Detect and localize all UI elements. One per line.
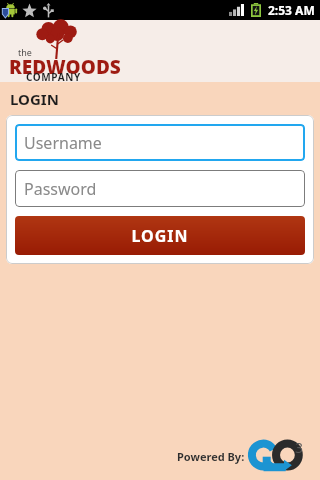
other: GO3: [249, 438, 311, 472]
staticText: 2:53 AM: [268, 2, 315, 18]
staticText: REDWOODS: [9, 54, 121, 80]
staticText: the: [18, 46, 32, 58]
staticText: LOGIN: [131, 225, 189, 247]
staticText: LOGIN: [10, 89, 59, 109]
staticText: Password: [24, 178, 97, 200]
button[interactable]: Username: [15, 124, 305, 161]
staticText: Powered By:: [177, 449, 245, 464]
staticText: COMPANY: [26, 70, 81, 84]
button[interactable]: Password: [15, 170, 305, 207]
staticText: 3: [295, 438, 304, 457]
staticText: Username: [24, 132, 102, 154]
button[interactable]: LOGIN: [15, 216, 305, 255]
